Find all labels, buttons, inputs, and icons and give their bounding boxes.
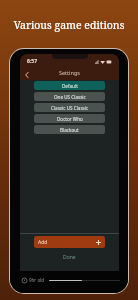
staticText: Default xyxy=(62,83,78,89)
staticText: 6:57 xyxy=(27,58,37,65)
staticText: Settings xyxy=(59,69,80,76)
button[interactable]: Back xyxy=(22,70,32,80)
button[interactable]: One US Classic xyxy=(34,92,105,101)
staticText: Classic US Classic xyxy=(51,105,89,111)
staticText: Various game editions xyxy=(0,18,138,32)
button[interactable]: Add xyxy=(34,236,105,248)
staticText: Add xyxy=(38,239,48,246)
button[interactable]: Doctor Who xyxy=(34,114,105,123)
button[interactable]: Classic US Classic xyxy=(34,103,105,112)
staticText: One US Classic xyxy=(54,94,86,100)
staticText: Blackout xyxy=(60,127,79,133)
staticText: Doctor Who xyxy=(57,116,83,122)
button[interactable]: Done xyxy=(20,253,119,262)
button[interactable]: Default xyxy=(34,81,105,90)
staticText: Done xyxy=(63,254,76,261)
staticText: 9hr old xyxy=(29,277,45,283)
button[interactable]: Blackout xyxy=(34,125,105,134)
